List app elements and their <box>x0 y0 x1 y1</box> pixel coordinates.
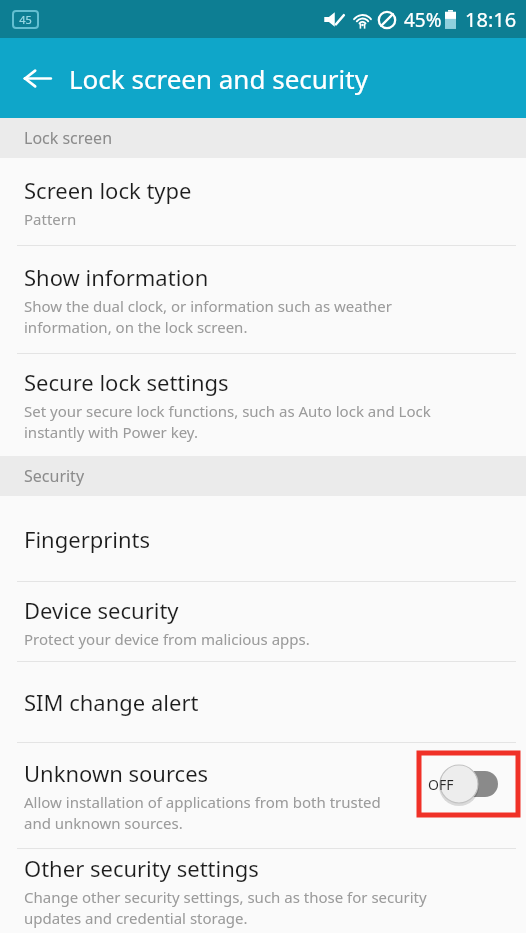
staticText: Security <box>24 465 85 487</box>
staticText: Set your secure lock functions, such as … <box>24 401 431 443</box>
staticText: Fingerprints <box>24 524 151 554</box>
staticText: Lock screen and security <box>69 61 368 96</box>
button[interactable]: Navigate up <box>14 55 60 101</box>
staticText: Other security settings <box>24 853 259 883</box>
staticText: SIM change alert <box>24 687 199 717</box>
button[interactable]: Unknown sources, off <box>419 753 518 815</box>
button[interactable]: Other security settings <box>0 849 526 933</box>
staticText: OFF <box>428 775 454 794</box>
staticText: 18:16 <box>465 6 517 33</box>
button[interactable]: SIM change alert <box>0 662 526 742</box>
staticText: Protect your device from malicious apps. <box>24 629 310 649</box>
button[interactable]: Device security <box>0 582 526 661</box>
staticText: Unknown sources <box>24 758 209 788</box>
button[interactable]: Fingerprints <box>0 496 526 581</box>
staticText: Secure lock settings <box>24 367 229 397</box>
button[interactable]: Secure lock settings <box>0 354 526 456</box>
staticText: Show information <box>24 262 209 292</box>
staticText: Device security <box>24 595 179 625</box>
staticText: Pattern <box>24 209 77 229</box>
button[interactable]: Show information <box>0 246 526 353</box>
staticText: 45 <box>19 12 32 27</box>
button[interactable]: Screen lock type <box>0 158 526 245</box>
staticText: Change other security settings, such as … <box>24 887 427 929</box>
staticText: Show the dual clock, or information such… <box>24 296 393 338</box>
staticText: Allow installation of applications from … <box>24 792 381 834</box>
staticText: Lock screen <box>24 127 113 149</box>
staticText: Screen lock type <box>24 175 192 205</box>
button[interactable]: Unknown sources <box>0 743 526 848</box>
staticText: 45% <box>404 7 442 33</box>
